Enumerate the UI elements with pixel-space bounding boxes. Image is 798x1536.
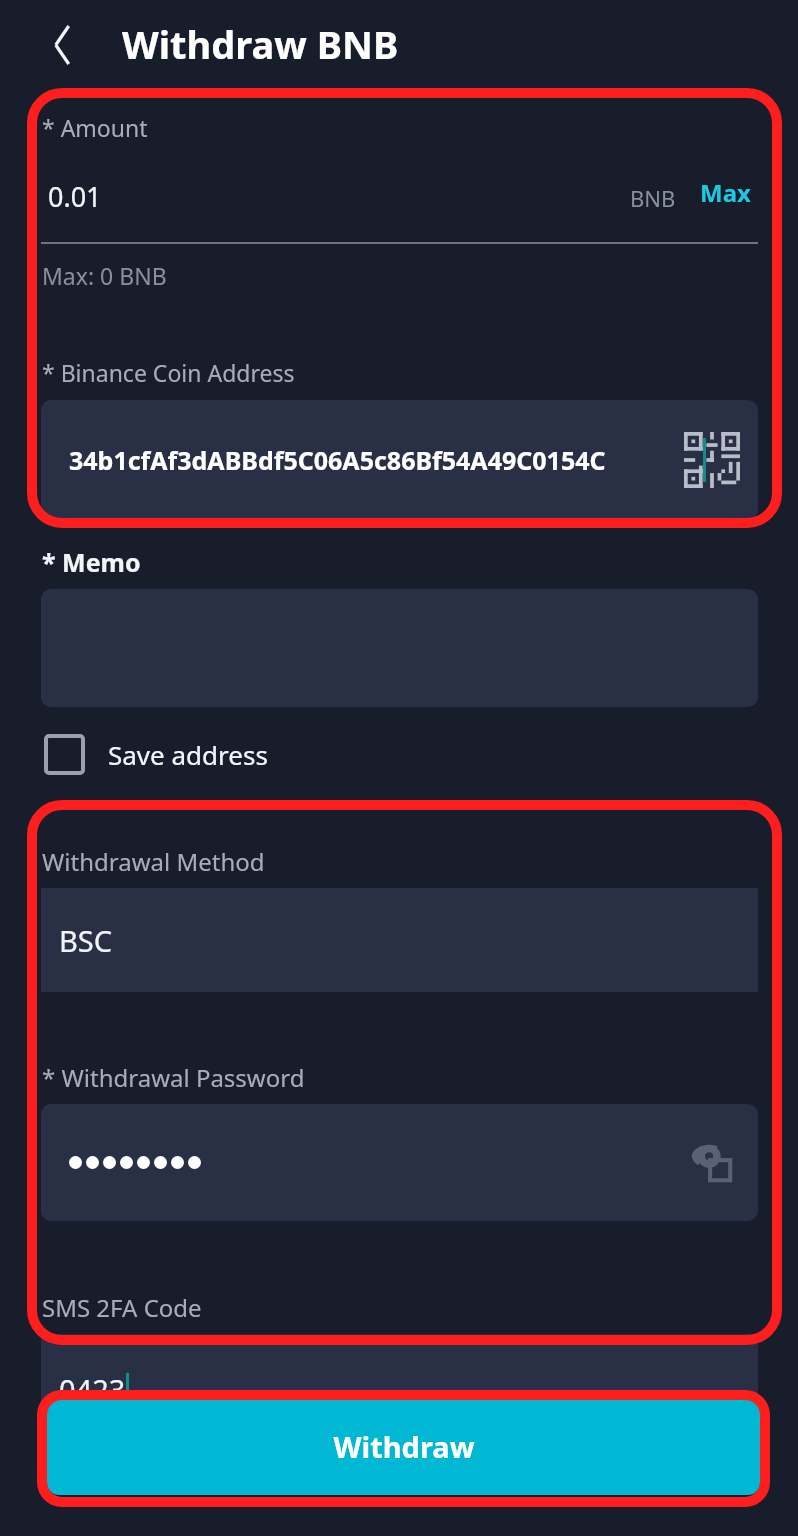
staticText: Max: 0 BNB: [42, 260, 167, 291]
staticText: SMS 2FA Code: [42, 1291, 202, 1324]
staticText: Max: [700, 176, 751, 209]
button[interactable]: 0.01: [48, 178, 102, 215]
staticText: * Binance Coin Address: [42, 357, 295, 388]
staticText: * Withdrawal Password: [42, 1061, 305, 1094]
button[interactable]: 34b1cfAf3dABBdf5C06A5c86Bf54A49C0154C: [41, 400, 758, 520]
staticText: Save address: [108, 737, 268, 772]
staticText: Withdraw BNB: [122, 18, 399, 70]
staticText: BSC: [59, 921, 113, 960]
staticText: Withdraw: [333, 1427, 475, 1466]
staticText: BNB: [630, 183, 676, 213]
button[interactable]: Scan QR code: [684, 432, 740, 488]
staticText: 34b1cfAf3dABBdf5C06A5c86Bf54A49C0154C: [69, 443, 694, 477]
staticText: 0423: [59, 1370, 126, 1409]
button[interactable]: Max: [700, 176, 751, 209]
button[interactable]: 0423: [41, 1334, 758, 1444]
staticText: * Memo: [42, 545, 141, 579]
staticText: * Amount: [42, 112, 148, 143]
button[interactable]: Save address: [46, 736, 268, 773]
button[interactable]: BSC: [41, 888, 758, 992]
button[interactable]: Back: [30, 14, 92, 76]
button[interactable]: Show password: [41, 1104, 758, 1221]
staticText: Withdrawal Method: [42, 845, 265, 878]
button[interactable]: Withdraw: [47, 1398, 760, 1495]
button[interactable]: Show password: [688, 1139, 736, 1187]
